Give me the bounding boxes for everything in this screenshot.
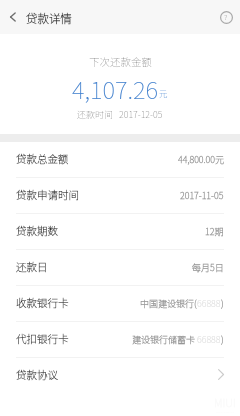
staticText: 中国建设银行( bbox=[140, 297, 197, 310]
button[interactable]: Help bbox=[216, 7, 236, 27]
staticText: 贷款申请时间 bbox=[16, 187, 79, 202]
button[interactable]: 贷款期数 bbox=[0, 214, 240, 250]
staticText: 还款时间 bbox=[77, 108, 114, 121]
staticText: 建设银行储蓄卡 bbox=[132, 333, 197, 346]
staticText: 下次还款金额 bbox=[89, 54, 152, 69]
staticText: 贷款期数 bbox=[16, 223, 58, 238]
staticText: 44,800.00元 bbox=[178, 153, 224, 166]
button[interactable]: Back bbox=[0, 4, 26, 30]
button[interactable]: 贷款协议 bbox=[0, 358, 240, 393]
button[interactable]: 代扣银行卡 bbox=[0, 322, 240, 358]
staticText: 收款银行卡 bbox=[16, 295, 69, 310]
staticText: 66888 bbox=[197, 333, 221, 346]
staticText: 2017-12-05 bbox=[119, 108, 163, 121]
staticText: 贷款协议 bbox=[16, 367, 58, 382]
staticText: ) bbox=[221, 297, 224, 310]
staticText: 还款日 bbox=[16, 259, 48, 274]
button[interactable]: 贷款总金额 bbox=[0, 142, 240, 178]
staticText: ) bbox=[221, 333, 224, 346]
staticText: 每月5日 bbox=[192, 261, 224, 274]
staticText: 4,107.26 bbox=[72, 71, 159, 106]
staticText: 66888 bbox=[197, 297, 221, 310]
staticText: 贷款详情 bbox=[26, 10, 72, 27]
staticText: 2017-11-05 bbox=[180, 189, 224, 202]
button[interactable]: 贷款申请时间 bbox=[0, 178, 240, 214]
staticText: 元 bbox=[159, 87, 168, 99]
button[interactable]: 收款银行卡 bbox=[0, 286, 240, 322]
staticText: 12期 bbox=[205, 225, 224, 238]
staticText: 贷款总金额 bbox=[16, 151, 69, 166]
staticText: 代扣银行卡 bbox=[16, 331, 69, 346]
button[interactable]: 还款日 bbox=[0, 250, 240, 286]
staticText: ? bbox=[224, 11, 228, 23]
